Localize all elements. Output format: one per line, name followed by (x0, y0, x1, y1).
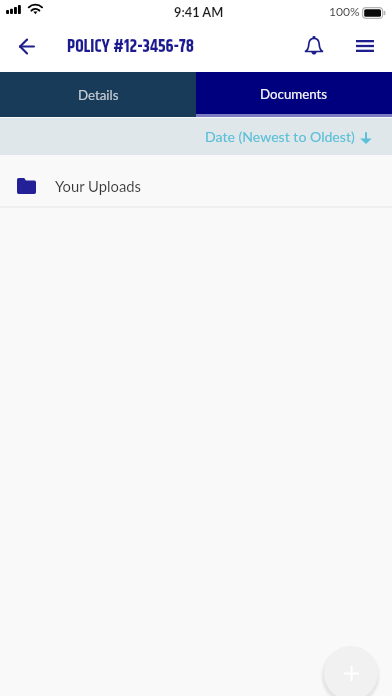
button[interactable]: Add document (324, 646, 378, 696)
button[interactable]: Details (0, 72, 196, 117)
button[interactable]: Back (8, 27, 46, 65)
staticText: Date (Newest to Oldest) (205, 128, 355, 145)
staticText: Your Uploads (55, 177, 141, 195)
staticText: 9:41 AM (174, 4, 224, 19)
button[interactable]: Notifications (295, 27, 333, 65)
staticText: 100% (329, 4, 360, 19)
staticText: Details (78, 87, 119, 103)
button[interactable]: Menu (346, 27, 384, 65)
button[interactable]: Your Uploads (0, 155, 392, 208)
staticText: Documents (260, 86, 328, 102)
button[interactable]: Date (Newest to Oldest) (205, 128, 372, 145)
button[interactable]: Documents (196, 72, 392, 117)
staticText: POLICY #12-3456-78 (67, 34, 194, 60)
